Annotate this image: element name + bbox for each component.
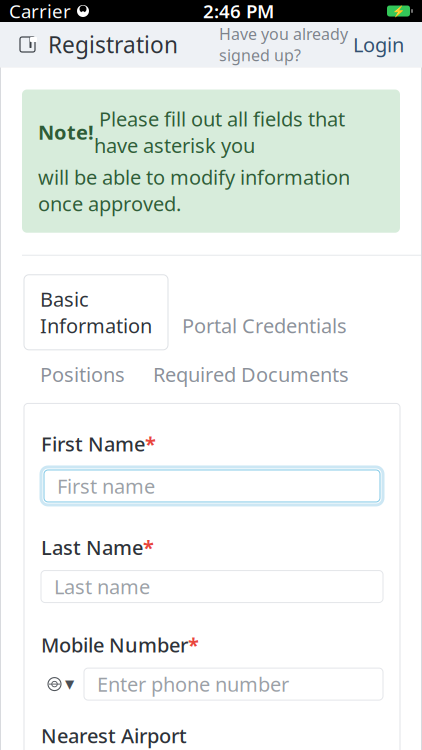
button[interactable]: Last name <box>41 570 383 602</box>
staticText: Please fill out all fields that have ast… <box>94 105 345 159</box>
button[interactable]: Enter phone number <box>84 668 383 700</box>
staticText: Carrier <box>9 0 71 23</box>
staticText: Mobile Number <box>41 631 188 658</box>
staticText: will be able to modify information once … <box>38 164 350 217</box>
staticText: * <box>188 631 199 658</box>
staticText: Portal Credentials <box>182 312 347 339</box>
button[interactable]: Portal Credentials <box>168 301 361 350</box>
button[interactable]: Registration <box>18 29 178 59</box>
staticText: Last Name <box>41 534 143 561</box>
button[interactable]: Basic Information <box>24 275 168 350</box>
staticText: Have you already signed up? <box>219 23 348 66</box>
staticText: Enter phone number <box>97 671 289 697</box>
staticText: ▼ <box>65 677 74 691</box>
staticText: * <box>143 534 154 561</box>
staticText: ⚡ <box>392 5 405 17</box>
staticText: Note! <box>38 119 94 145</box>
button[interactable]: Positions <box>40 361 125 387</box>
staticText: First name <box>57 473 155 499</box>
staticText: Login <box>353 31 404 58</box>
staticText: Nearest Airport <box>41 722 187 749</box>
button[interactable]: Login <box>353 31 404 58</box>
staticText: * <box>145 430 156 457</box>
staticText: Required Documents <box>153 361 349 387</box>
staticText: First Name <box>41 430 145 457</box>
staticText: 2:46 PM <box>203 0 274 23</box>
button[interactable]: Select country code <box>41 677 74 692</box>
staticText: Basic Information <box>40 286 152 339</box>
staticText: Positions <box>40 361 125 387</box>
staticText: Last name <box>54 573 150 600</box>
button[interactable]: Required Documents <box>153 361 349 387</box>
staticText: Registration <box>48 29 178 59</box>
button[interactable]: First name <box>41 467 383 505</box>
